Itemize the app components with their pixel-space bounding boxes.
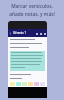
button[interactable]: Highlight colour bbox=[28, 82, 33, 86]
button[interactable]: Highlight colour bbox=[10, 82, 15, 86]
staticText: añade notas, y más! bbox=[9, 11, 55, 18]
button[interactable]: Action bbox=[35, 32, 38, 35]
staticText: Génesis 1 bbox=[13, 31, 27, 35]
button[interactable]: Action bbox=[39, 32, 42, 35]
button[interactable]: Back bbox=[8, 29, 47, 37]
staticText: Marcar versículos, bbox=[11, 3, 53, 10]
button[interactable]: Action bbox=[43, 32, 46, 35]
button[interactable] bbox=[10, 51, 45, 71]
button[interactable]: Back bbox=[9, 32, 12, 35]
button[interactable]: Highlight colour bbox=[16, 82, 21, 86]
